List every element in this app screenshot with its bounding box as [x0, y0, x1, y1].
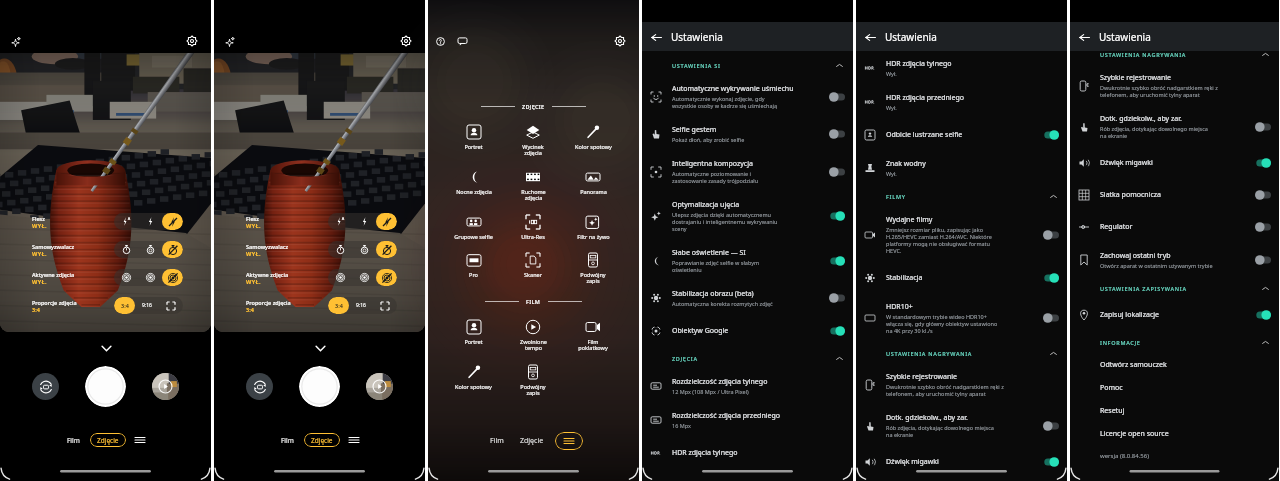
button[interactable]: MOTION_B: [352, 269, 376, 286]
button[interactable]: Back: [860, 27, 880, 47]
button[interactable]: Off: [829, 167, 845, 177]
button[interactable]: TIMER3: [114, 241, 138, 258]
button[interactable]: Szybkie rejestrowanie: [1070, 65, 1279, 106]
button[interactable]: FILMY: [856, 185, 1067, 207]
button[interactable]: MOTION_OFF: [376, 269, 397, 286]
button[interactable]: Stabilizacja: [856, 262, 1067, 294]
button[interactable]: Zapisuj lokalizacje: [1070, 299, 1279, 331]
button[interactable]: Full screen ratio: [159, 297, 183, 314]
button[interactable]: Full screen ratio: [373, 297, 397, 314]
button[interactable]: Regulator: [1070, 211, 1279, 243]
button[interactable]: Switch camera: [246, 373, 273, 400]
button[interactable]: Grupowe selfie: [444, 213, 503, 242]
button[interactable]: INFORMACJE: [1070, 331, 1279, 353]
button[interactable]: Podwójny zapis: [503, 363, 563, 399]
button[interactable]: USTAWIENIA NAGRYWANIA: [856, 342, 1067, 364]
button[interactable]: Stabilizacja obrazu (beta): [642, 281, 853, 315]
button[interactable]: Collapse: [96, 338, 116, 358]
button[interactable]: Skaner: [503, 251, 563, 280]
button[interactable]: USTAWIENIA NAGRYWANIA: [1070, 43, 1279, 65]
button[interactable]: Dźwięk migawki: [856, 446, 1067, 478]
button[interactable]: FLASH_AUTO: [328, 213, 352, 230]
button[interactable]: 9:16: [349, 297, 373, 314]
button[interactable]: Pro: [444, 251, 503, 280]
button[interactable]: Film: [63, 434, 84, 447]
button[interactable]: Zdjęcie: [304, 433, 340, 447]
button[interactable]: HDR10+: [856, 294, 1067, 342]
button[interactable]: Automatyczne wykrywanie uśmiechu: [642, 76, 853, 117]
button[interactable]: Off: [1043, 421, 1059, 431]
button[interactable]: TIMER10: [352, 241, 376, 258]
button[interactable]: FLASH_OFF: [162, 213, 183, 230]
button[interactable]: MOTION_A: [328, 269, 352, 286]
button[interactable]: FLASH_ON: [352, 213, 376, 230]
button[interactable]: MOTION_A: [114, 269, 138, 286]
button[interactable]: Take photo: [299, 366, 340, 407]
button[interactable]: Settings: [395, 30, 417, 52]
button[interactable]: Help: [431, 32, 449, 50]
button[interactable]: Zwolnione tempo: [503, 318, 563, 354]
button[interactable]: Obiektyw Google: [642, 315, 853, 347]
button[interactable]: Resetuj: [1070, 399, 1279, 422]
button[interactable]: Off: [1255, 190, 1271, 200]
button[interactable]: Off: [829, 129, 845, 139]
button[interactable]: FLASH_AUTO: [114, 213, 138, 230]
button[interactable]: Settings: [181, 30, 203, 52]
button[interactable]: On: [1043, 130, 1059, 140]
button[interactable]: Odbicie lustrzane selfie: [856, 119, 1067, 151]
button[interactable]: TIMER3: [328, 241, 352, 258]
button[interactable]: Off: [1043, 313, 1059, 323]
button[interactable]: Słabe oświetlenie — SI: [642, 240, 853, 281]
button[interactable]: More modes: [555, 432, 583, 450]
button[interactable]: TIMER_OFF: [376, 241, 397, 258]
button[interactable]: Gallery: [152, 373, 179, 400]
button[interactable]: Portret: [444, 123, 503, 152]
button[interactable]: On: [829, 326, 845, 336]
button[interactable]: Gallery: [366, 373, 393, 400]
button[interactable]: Pomoc: [1070, 376, 1279, 399]
button[interactable]: 9:16: [135, 297, 159, 314]
button[interactable]: MOTION_B: [138, 269, 162, 286]
button[interactable]: Feedback: [453, 32, 471, 50]
button[interactable]: On: [1255, 158, 1271, 168]
button[interactable]: On: [829, 211, 845, 221]
button[interactable]: Settings: [609, 30, 631, 52]
button[interactable]: Collapse: [310, 338, 330, 358]
button[interactable]: Filtr na żywo: [563, 213, 623, 242]
button[interactable]: Selfie gestem: [642, 117, 853, 151]
button[interactable]: Zdjęcie: [515, 434, 549, 448]
button[interactable]: Inteligentna kompozycja: [642, 151, 853, 192]
button[interactable]: More modes: [132, 432, 148, 448]
button[interactable]: Kolor spotowy: [563, 123, 623, 152]
button[interactable]: Zachowaj ostatni tryb: [1070, 243, 1279, 277]
button[interactable]: FLASH_ON: [138, 213, 162, 230]
button[interactable]: Rozdzielczość zdjęcia przedniego: [642, 403, 853, 437]
button[interactable]: ZDJĘCIA: [642, 347, 853, 369]
button[interactable]: TIMER10: [138, 241, 162, 258]
button[interactable]: Scene optimizer: [4, 30, 26, 52]
button[interactable]: HDR zdjęcia tylnego: [856, 51, 1067, 85]
button[interactable]: Rozdzielczość zdjęcia tylnego: [642, 369, 853, 403]
button[interactable]: On: [1043, 457, 1059, 467]
button[interactable]: Ultra-Res: [503, 213, 563, 242]
button[interactable]: Back: [646, 27, 666, 47]
button[interactable]: Panorama: [563, 168, 623, 197]
button[interactable]: On: [829, 256, 845, 266]
button[interactable]: Film poklatkowy: [563, 318, 623, 354]
button[interactable]: 3:4: [328, 297, 349, 314]
button[interactable]: MOTION_OFF: [162, 269, 183, 286]
button[interactable]: Znak wodny: [856, 151, 1067, 185]
button[interactable]: Switch camera: [32, 373, 59, 400]
button[interactable]: Off: [1043, 230, 1059, 240]
button[interactable]: Podwójny zapis: [563, 251, 623, 287]
button[interactable]: TIMER_OFF: [162, 241, 183, 258]
button[interactable]: Off: [829, 92, 845, 102]
button[interactable]: Off: [1255, 122, 1271, 132]
button[interactable]: Wycinek zdjęcia: [503, 123, 563, 159]
button[interactable]: Siatka pomocnicza: [1070, 179, 1279, 211]
button[interactable]: Dźwięk migawki: [1070, 147, 1279, 179]
button[interactable]: Scene optimizer: [218, 30, 240, 52]
button[interactable]: Ruchome zdjęcia: [503, 168, 563, 204]
button[interactable]: On: [1255, 310, 1271, 320]
button[interactable]: Optymalizacja ujęcia: [642, 192, 853, 240]
